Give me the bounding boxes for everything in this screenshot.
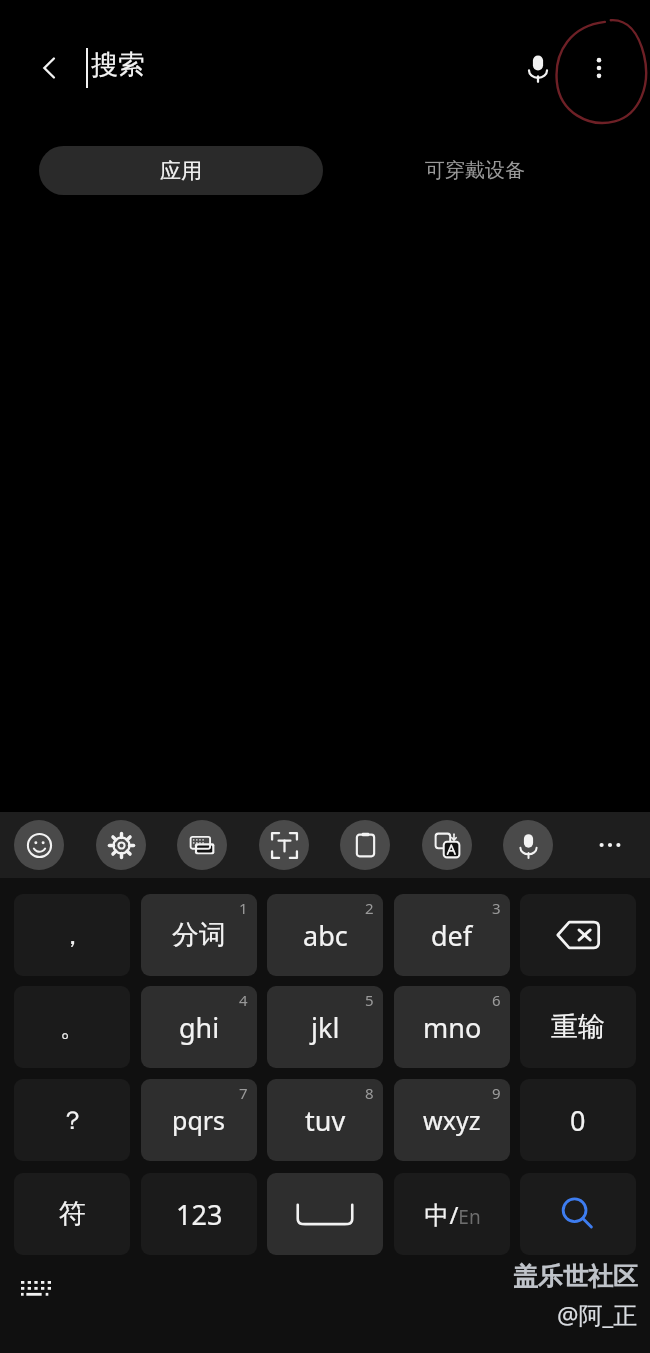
button[interactable]: ，	[14, 894, 130, 976]
button[interactable]: ghi	[141, 986, 257, 1068]
button[interactable]: def	[394, 894, 510, 976]
button[interactable]: 0	[520, 1079, 636, 1161]
button[interactable]: Switch language	[394, 1173, 510, 1255]
staticText: def	[431, 917, 473, 954]
button[interactable]: Back	[24, 42, 76, 94]
button[interactable]: Translate	[422, 820, 472, 870]
button[interactable]: 。	[14, 986, 130, 1068]
staticText: 9	[492, 1083, 501, 1103]
staticText: tuv	[305, 1102, 346, 1139]
staticText: 分词	[172, 918, 226, 952]
staticText: 3	[492, 898, 501, 918]
button[interactable]: Emoji	[14, 820, 64, 870]
staticText: ？	[60, 1105, 85, 1136]
button[interactable]: Voice input	[503, 820, 553, 870]
button[interactable]: Hide keyboard	[14, 1274, 58, 1308]
button[interactable]: 应用	[39, 146, 323, 195]
staticText: 搜索	[91, 48, 145, 82]
staticText: 7	[239, 1083, 248, 1103]
button[interactable]: 可穿戴设备	[330, 146, 620, 195]
staticText: ，	[60, 920, 85, 951]
button[interactable]: mno	[394, 986, 510, 1068]
button[interactable]: Search	[520, 1173, 636, 1255]
button[interactable]: pqrs	[141, 1079, 257, 1161]
button[interactable]: 符	[14, 1173, 130, 1255]
button[interactable]: 重输	[520, 986, 636, 1068]
staticText: 符	[59, 1197, 86, 1231]
button[interactable]: Space	[267, 1173, 383, 1255]
staticText: 1	[239, 898, 248, 918]
staticText: 123	[176, 1196, 223, 1233]
button[interactable]: Keyboard layouts	[177, 820, 227, 870]
button[interactable]: Text recognition	[259, 820, 309, 870]
staticText: 0	[570, 1102, 586, 1139]
button[interactable]: Clipboard	[340, 820, 390, 870]
button[interactable]: Backspace	[520, 894, 636, 976]
button[interactable]: More options	[573, 42, 625, 94]
staticText: 5	[365, 990, 374, 1010]
staticText: 2	[365, 898, 374, 918]
staticText: 6	[492, 990, 501, 1010]
button[interactable]: jkl	[267, 986, 383, 1068]
staticText: 。	[60, 1012, 85, 1043]
staticText: @阿_正	[557, 1298, 638, 1331]
button[interactable]: abc	[267, 894, 383, 976]
staticText: abc	[303, 917, 348, 954]
staticText: 重输	[551, 1010, 605, 1044]
staticText: wxyz	[423, 1103, 481, 1137]
staticText: ghi	[179, 1009, 220, 1046]
button[interactable]: 123	[141, 1173, 257, 1255]
staticText: jkl	[311, 1009, 340, 1046]
staticText: pqrs	[172, 1103, 226, 1137]
staticText: 应用	[160, 158, 202, 184]
button[interactable]: wxyz	[394, 1079, 510, 1161]
button[interactable]: ？	[14, 1079, 130, 1161]
button[interactable]: Settings	[96, 820, 146, 870]
staticText: 可穿戴设备	[425, 158, 525, 183]
button[interactable]: Voice search	[512, 42, 564, 94]
staticText: mno	[423, 1009, 482, 1046]
staticText: 4	[239, 990, 248, 1010]
staticText: 中/En	[424, 1198, 481, 1231]
button[interactable]: More	[585, 820, 635, 870]
button[interactable]: 分词	[141, 894, 257, 976]
button[interactable]: tuv	[267, 1079, 383, 1161]
staticText: 8	[365, 1083, 374, 1103]
staticText: 盖乐世社区	[513, 1261, 638, 1292]
